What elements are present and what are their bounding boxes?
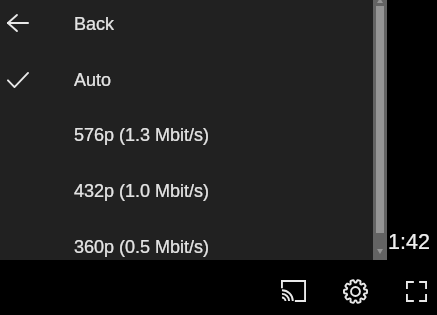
staticText: Auto xyxy=(74,70,112,90)
staticText: 432p (1.0 Mbit/s) xyxy=(74,181,210,201)
button[interactable]: Cast to device xyxy=(269,267,317,315)
button[interactable]: Settings xyxy=(331,267,379,315)
staticText: 576p (1.3 Mbit/s) xyxy=(74,125,210,145)
staticText: 360p (0.5 Mbit/s) xyxy=(74,237,210,257)
button[interactable]: 432p (1.0 Mbit/s) xyxy=(0,163,373,219)
staticText: Back xyxy=(74,14,115,34)
button[interactable]: Scrollbar xyxy=(373,0,387,260)
button[interactable]: 360p (0.5 Mbit/s) xyxy=(0,219,373,275)
button[interactable]: Fullscreen xyxy=(392,267,437,315)
button[interactable]: 576p (1.3 Mbit/s) xyxy=(0,107,373,163)
staticText: 1:42 xyxy=(388,230,430,254)
button[interactable]: Back xyxy=(0,0,373,52)
button[interactable]: Auto xyxy=(0,52,373,108)
